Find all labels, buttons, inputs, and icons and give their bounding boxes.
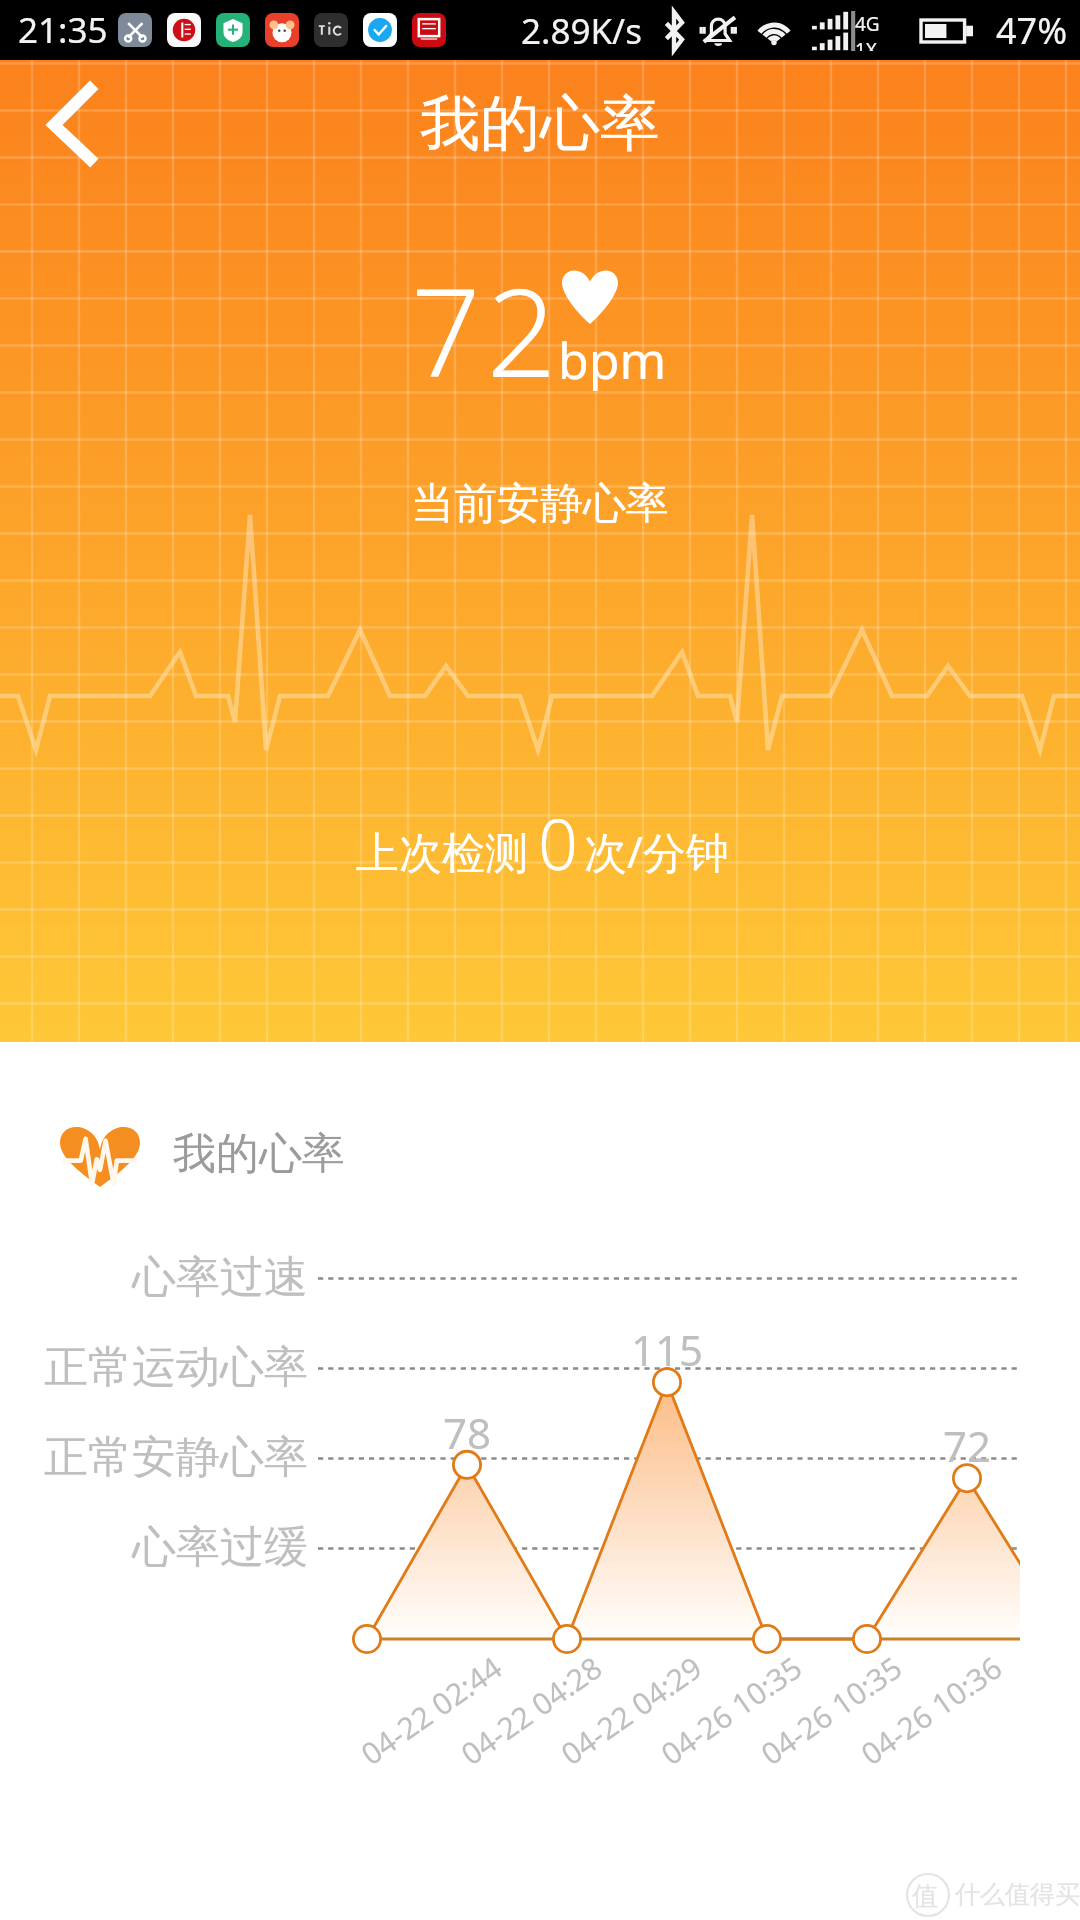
button[interactable]: 我的心率	[40, 1104, 460, 1204]
staticText: 值	[912, 1880, 938, 1913]
staticText: 心率过速	[0, 1250, 308, 1305]
staticText: bpm	[558, 326, 667, 394]
staticText: 上次检测	[356, 827, 528, 881]
staticText: 次/分钟	[584, 822, 729, 881]
staticText: 当前安静心率	[411, 477, 669, 531]
staticText: 正常运动心率	[0, 1340, 308, 1395]
staticText: 0	[538, 795, 578, 890]
staticText: 04-26 10:35	[606, 1647, 809, 1807]
staticText: 04-26 10:36	[806, 1647, 1009, 1807]
staticText: 72	[907, 1417, 1027, 1474]
staticText: 115	[607, 1321, 727, 1378]
staticText: 04-22 02:44	[306, 1647, 509, 1807]
staticText: 1X	[855, 37, 878, 51]
staticText: 78	[407, 1404, 527, 1461]
staticText: 2.89K/s	[521, 7, 642, 55]
staticText: 04-22 04:29	[506, 1647, 709, 1807]
staticText: 04-26 10:35	[706, 1647, 909, 1807]
staticText: 47%	[996, 6, 1068, 55]
staticText: 我的心率	[173, 1127, 345, 1181]
staticText: 21:35	[18, 6, 108, 54]
staticText: 4G	[855, 11, 880, 37]
staticText: 正常安静心率	[0, 1430, 308, 1485]
button[interactable]: Back	[22, 64, 118, 164]
staticText: 什么值得买	[955, 1879, 1080, 1910]
staticText: 72	[411, 247, 563, 413]
staticText: 心率过缓	[0, 1520, 308, 1575]
staticText: 我的心率	[420, 86, 660, 162]
staticText: 04-22 04:28	[406, 1647, 609, 1807]
